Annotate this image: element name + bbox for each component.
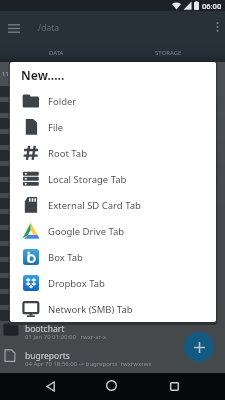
- staticText: New.....: [21, 67, 65, 83]
- button[interactable]: [6, 20, 22, 36]
- staticText: /data: [38, 22, 59, 34]
- button[interactable]: Folder: [10, 88, 216, 114]
- button[interactable]: [184, 332, 214, 362]
- button[interactable]: STORAGE: [112, 44, 225, 62]
- staticText: DATA: [49, 49, 64, 57]
- staticText: bugreports: [25, 350, 70, 362]
- button[interactable]: Dropbox Tab: [10, 270, 216, 296]
- staticText: 01 Jan 70 01:00:00 rwxr-xr-x: [25, 333, 107, 341]
- staticText: Folder: [48, 95, 77, 108]
- staticText: Local Storage Tab: [48, 173, 127, 186]
- staticText: File: [48, 121, 64, 134]
- button[interactable]: [43, 379, 57, 393]
- staticText: 06:00: [202, 1, 222, 11]
- button[interactable]: External SD Card Tab: [10, 192, 216, 218]
- button[interactable]: [105, 379, 118, 392]
- staticText: External SD Card Tab: [48, 199, 141, 212]
- button[interactable]: Local Storage Tab: [10, 166, 216, 192]
- staticText: Box Tab: [48, 251, 83, 264]
- staticText: Network (SMB) Tab: [48, 303, 133, 316]
- staticText: 11: [2, 70, 9, 78]
- staticText: STORAGE: [155, 49, 182, 57]
- button[interactable]: Network (SMB) Tab: [10, 296, 216, 322]
- button[interactable]: DATA: [0, 44, 112, 62]
- button[interactable]: [168, 380, 181, 393]
- staticText: Dropbox Tab: [48, 277, 105, 290]
- button[interactable]: Google Drive Tab: [10, 218, 216, 244]
- staticText: Google Drive Tab: [48, 225, 125, 238]
- button[interactable]: Root Tab: [10, 140, 216, 166]
- staticText: Root Tab: [48, 147, 87, 160]
- staticText: 04 Apr 70 18:56:00 -> bugreports rwxrwxr…: [25, 360, 152, 368]
- button[interactable]: Box Tab: [10, 244, 216, 270]
- button[interactable]: [210, 20, 224, 34]
- button[interactable]: File: [10, 114, 216, 140]
- staticText: bootchart: [25, 323, 65, 335]
